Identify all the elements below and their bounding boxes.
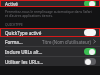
button[interactable]: Activé [0, 0, 100, 7]
button[interactable]: Activé [84, 0, 96, 7]
staticText: QUICKTYPE [5, 22, 23, 26]
staticText: Inclure URLs alternatives [5, 49, 44, 55]
button[interactable]: Format QuickType [0, 37, 100, 46]
button[interactable]: QuickType activé [84, 29, 96, 36]
button[interactable]: Utiliser les URLs dans les champs person… [0, 57, 100, 66]
button[interactable]: Utiliser les URLs dans les champs person… [84, 58, 96, 65]
staticText: et d'autres applications tierces. [5, 13, 53, 17]
staticText: Permettez-nous le remplissage automatiqu… [5, 9, 92, 13]
button[interactable]: QuickType activé [0, 28, 100, 37]
staticText: Titre (Nom d'utilisateur) [42, 39, 91, 45]
staticText: Activé [5, 1, 18, 7]
button[interactable]: Inclure URLs alternatives [84, 48, 96, 55]
staticText: QuickType activé [5, 30, 42, 36]
staticText: Utiliser les URLs dans les champs person… [5, 59, 44, 65]
staticText: Format QuickType [5, 39, 23, 45]
button[interactable]: Inclure URLs alternatives [0, 47, 100, 56]
